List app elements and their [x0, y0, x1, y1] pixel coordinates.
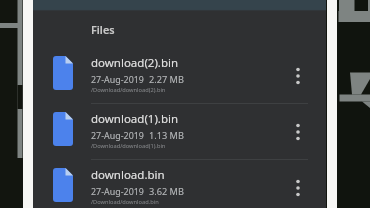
staticText: download.bin: [91, 167, 165, 183]
staticText: /Download/download(1).bin: [91, 142, 166, 150]
button[interactable]: download.bin: [33, 160, 326, 208]
staticText: Files: [91, 22, 115, 37]
button[interactable]: download(2).bin: [33, 48, 326, 104]
staticText: download(1).bin: [91, 111, 179, 127]
staticText: 2.27 MB: [149, 73, 184, 86]
staticText: 1.13 MB: [149, 129, 184, 142]
staticText: 27-Aug-2019: [91, 129, 144, 141]
staticText: 27-Aug-2019: [91, 185, 144, 197]
button[interactable]: [287, 121, 309, 143]
staticText: /Download/download.bin: [91, 198, 159, 206]
button[interactable]: download(1).bin: [33, 104, 326, 160]
button[interactable]: [287, 65, 309, 87]
staticText: 3.62 MB: [149, 185, 184, 198]
staticText: 27-Aug-2019: [91, 73, 144, 85]
staticText: /Download/download(2).bin: [91, 86, 166, 94]
staticText: download(2).bin: [91, 55, 179, 71]
button[interactable]: [287, 177, 309, 199]
